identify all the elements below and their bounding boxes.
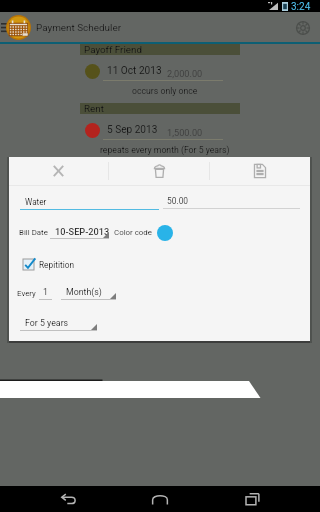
- staticText: occurs only once: [132, 86, 198, 96]
- button[interactable]: Rent: [0, 103, 320, 161]
- button[interactable]: Payoff Friend: [0, 44, 320, 102]
- staticText: Payoff Friend: [84, 44, 142, 55]
- button[interactable]: Repitition: [23, 256, 93, 272]
- staticText: Month(s): [66, 287, 102, 297]
- button[interactable]: Delete: [109, 157, 209, 185]
- button[interactable]: For 5 years: [20, 317, 97, 331]
- button[interactable]: Settings: [290, 15, 316, 41]
- staticText: Water: [25, 197, 47, 207]
- staticText: Every: [17, 289, 36, 298]
- staticText: 1,500.00: [167, 127, 203, 138]
- staticText: repeats every month (For 5 years): [100, 145, 230, 155]
- button[interactable]: Back: [44, 486, 92, 512]
- staticText: Payment Scheduler: [36, 22, 122, 34]
- staticText: 10-SEP-2013: [55, 226, 110, 237]
- staticText: Color code: [114, 228, 152, 237]
- button[interactable]: Home: [136, 486, 184, 512]
- staticText: Rent: [84, 103, 104, 114]
- button[interactable]: Recent apps: [228, 486, 276, 512]
- button[interactable]: Cancel: [9, 157, 108, 185]
- staticText: 1: [43, 287, 48, 297]
- button[interactable]: Save: [210, 157, 310, 185]
- staticText: 50.00: [167, 196, 189, 206]
- staticText: Repitition: [39, 260, 74, 270]
- button[interactable]: 1: [39, 286, 52, 300]
- button[interactable]: Color code: [157, 225, 173, 241]
- button[interactable]: Navigation menu: [0, 12, 7, 42]
- staticText: 11 Oct 2013: [107, 65, 162, 77]
- button[interactable]: 10-SEP-2013: [50, 225, 109, 239]
- staticText: 3:24: [291, 1, 311, 13]
- staticText: 5 Sep 2013: [107, 124, 158, 136]
- staticText: 2,000.00: [167, 68, 203, 79]
- staticText: Bill Date: [19, 228, 48, 237]
- staticText: For 5 years: [25, 318, 69, 328]
- button[interactable]: Month(s): [61, 286, 116, 300]
